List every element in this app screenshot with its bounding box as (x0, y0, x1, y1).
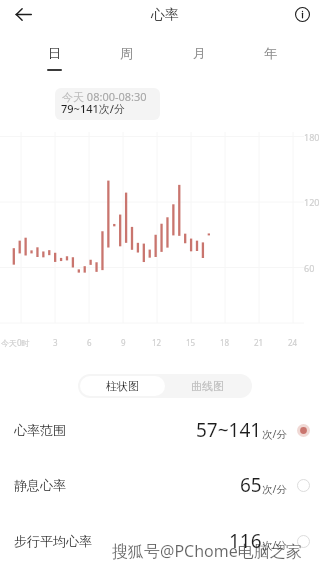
staticText: 180 (304, 131, 320, 143)
staticText: 120 (304, 196, 320, 208)
staticText: 21 (254, 337, 264, 348)
staticText: 3 (53, 337, 58, 348)
staticText: 18 (220, 337, 230, 348)
staticText: 周 (120, 45, 133, 61)
staticText: 今天0时 (1, 337, 30, 348)
button[interactable]: Info (289, 1, 315, 27)
staticText: 次/分 (262, 482, 287, 496)
staticText: 次/分 (262, 538, 287, 552)
button[interactable]: Back (9, 0, 37, 28)
staticText: 月 (193, 45, 206, 61)
button[interactable]: 年 (246, 42, 294, 63)
staticText: 心率 (151, 6, 179, 24)
staticText: 65 (240, 472, 262, 498)
staticText: 曲线图 (191, 379, 224, 393)
staticText: 年 (264, 45, 277, 61)
button[interactable]: 曲线图 (165, 376, 250, 396)
staticText: 12 (152, 337, 162, 348)
staticText: 日 (48, 45, 61, 61)
staticText: 今天 08:00-08:30 (62, 89, 147, 104)
staticText: 116 (229, 528, 262, 554)
staticText: 次/分 (262, 427, 287, 441)
staticText: 9 (121, 337, 126, 348)
button[interactable]: 周 (102, 42, 150, 63)
button[interactable]: 月 (175, 42, 223, 63)
staticText: 步行平均心率 (14, 533, 92, 549)
staticText: 搜狐号@PChome电脑之家 (112, 540, 302, 562)
staticText: 15 (186, 337, 196, 348)
staticText: 79~141次/分 (61, 101, 125, 116)
button[interactable]: 步行平均心率 (0, 525, 329, 557)
staticText: 57~141 (196, 417, 262, 443)
staticText: 24 (288, 337, 298, 348)
staticText: 60 (304, 262, 315, 274)
button[interactable]: 柱状图 (80, 376, 165, 396)
button[interactable]: 心率范围 (0, 414, 329, 446)
staticText: 心率范围 (14, 422, 66, 438)
button[interactable]: 日 (30, 42, 78, 63)
button[interactable]: 静息心率 (0, 469, 329, 501)
staticText: 6 (87, 337, 92, 348)
staticText: 柱状图 (106, 379, 139, 393)
staticText: 静息心率 (14, 477, 66, 493)
